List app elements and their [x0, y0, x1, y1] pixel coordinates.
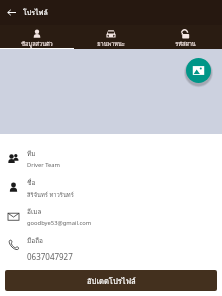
staticText: ชื่อ — [27, 178, 36, 188]
staticText: ทีม — [27, 149, 36, 159]
staticText: goodbye53@gmail.com — [27, 219, 92, 227]
button[interactable]: รหัสผ่าน — [148, 25, 222, 49]
staticText: สิริจันทร์ ทาวรินทร์ — [27, 190, 74, 199]
button[interactable]: ชื่อ — [0, 178, 222, 207]
staticText: อีเมล — [27, 207, 42, 217]
staticText: รหัสผ่าน — [175, 40, 196, 49]
staticText: มือถือ — [27, 236, 44, 246]
staticText: อัปเดตโปรไฟล์ — [87, 275, 136, 287]
button[interactable]: Back — [0, 0, 23, 25]
button[interactable]: Change photo — [186, 58, 211, 83]
staticText: 0637047927 — [27, 251, 73, 262]
staticText: ข้อมูลส่วนตัว — [21, 40, 53, 49]
staticText: โปรไฟล์ — [23, 7, 48, 18]
button[interactable]: ข้อมูลส่วนตัว — [0, 25, 74, 49]
staticText: ยานพาหนะ — [97, 40, 125, 49]
button[interactable]: มือถือ — [0, 236, 222, 265]
button[interactable]: ยานพาหนะ — [74, 25, 148, 49]
button[interactable]: อัปเดตโปรไฟล์ — [5, 270, 217, 291]
button[interactable]: ทีม — [0, 149, 222, 178]
button[interactable]: อีเมล — [0, 207, 222, 236]
staticText: Driver Team — [27, 161, 60, 169]
